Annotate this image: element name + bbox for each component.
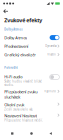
- button[interactable]: Dolby Atmos: [0, 33, 63, 42]
- button[interactable]: Recent apps: [5, 129, 19, 138]
- staticText: Hi-Fi audio: [4, 74, 22, 79]
- button[interactable]: Přednastavení: [0, 42, 63, 50]
- staticText: Dolby Atmos: [4, 28, 22, 31]
- staticText: Přizpůsobení zvuku sluchátek: [4, 89, 37, 100]
- staticText: Přednastavení: [4, 43, 28, 49]
- staticText: Pokročilé: [4, 66, 18, 69]
- staticText: Dolby Atmos: [4, 35, 27, 40]
- staticText: Vypnuto: [44, 90, 56, 93]
- button[interactable]: Back: [0, 7, 11, 15]
- button[interactable]: Okolní zvuk: [0, 100, 63, 111]
- button[interactable]: Home: [24, 129, 38, 138]
- button[interactable]: Nastavení hlasitosti: [0, 111, 63, 122]
- staticText: Dynamika: [45, 44, 56, 48]
- button[interactable]: Přizpůsobení zvuku sluchátek: [0, 87, 63, 100]
- staticText: Vlastní: [47, 53, 56, 56]
- staticText: Slyšte hudbu v kvalitě blízké studiu.: [4, 80, 42, 87]
- staticText: Zvukové efekty: [4, 17, 42, 24]
- staticText: Grafický ekvalizér: [4, 52, 36, 57]
- button[interactable]: Back: [44, 129, 58, 138]
- staticText: Okolní zvuk: [4, 102, 24, 107]
- button[interactable]: Grafický ekvalizér: [0, 50, 63, 59]
- button[interactable]: Hi-Fi audio: [0, 72, 63, 87]
- staticText: Nastavení hlasitosti: [4, 113, 37, 118]
- staticText: Přizpůsobte hlasitost médií.: [4, 119, 43, 122]
- staticText: Zesílí zvuky okolo vás.: [4, 108, 33, 111]
